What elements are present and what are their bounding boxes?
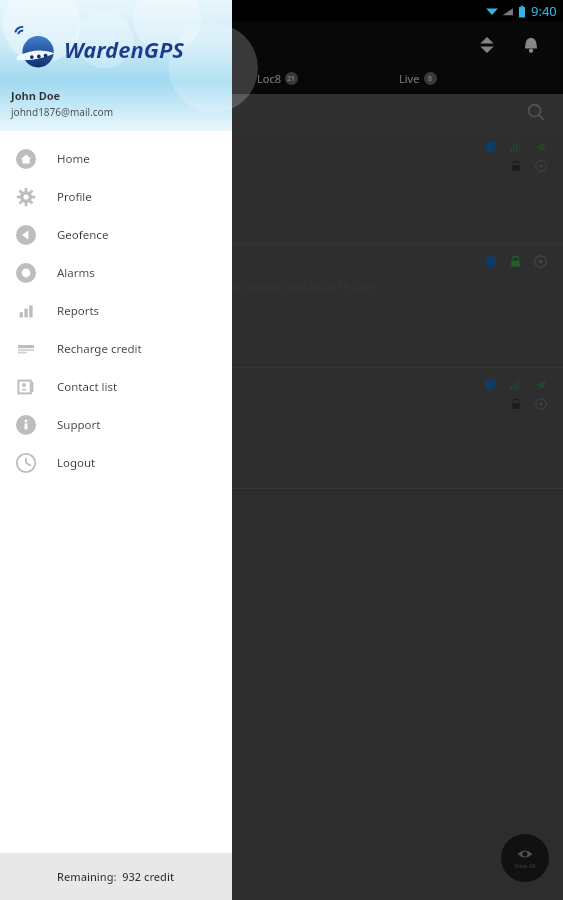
staticText: Protect bbox=[100, 71, 138, 86]
staticText: John Doe bbox=[11, 88, 61, 103]
button[interactable]: Sort bbox=[467, 25, 507, 65]
staticText: WardenGPS bbox=[64, 34, 184, 64]
button[interactable]: View All bbox=[501, 834, 549, 882]
button[interactable]: Protect bbox=[94, 69, 161, 88]
button[interactable]: 34% bbox=[0, 130, 563, 244]
button[interactable]: Profile bbox=[0, 178, 232, 216]
staticText: 8 bbox=[428, 74, 433, 84]
staticText: 34% bbox=[69, 186, 91, 201]
staticText: Support bbox=[57, 417, 101, 433]
staticText: Western Australia, Australia bbox=[0, 448, 128, 462]
staticText: Contact list bbox=[57, 379, 118, 395]
staticText: View All bbox=[514, 862, 536, 870]
button[interactable]: Notifications bbox=[511, 25, 551, 65]
button[interactable]: Last update 2020-01-03 15:47:03 bbox=[0, 245, 563, 367]
staticText: Live bbox=[399, 71, 420, 86]
staticText: Remaining: 932 credit bbox=[57, 869, 175, 884]
staticText: Reports bbox=[57, 303, 100, 319]
button[interactable]: Contact list bbox=[0, 368, 232, 406]
staticText: Recharge credit bbox=[57, 341, 142, 357]
button[interactable]: Loc8 bbox=[251, 69, 304, 88]
button[interactable]: Live bbox=[393, 69, 443, 88]
staticText: Loc8 bbox=[257, 71, 281, 86]
staticText: Last update 2020-01-03 15:47:03 bbox=[225, 281, 378, 295]
button[interactable]: Logout bbox=[0, 444, 232, 482]
staticText: Geofence bbox=[57, 227, 109, 243]
button[interactable]: Geofence bbox=[0, 216, 232, 254]
button[interactable]: Alarms bbox=[0, 254, 232, 292]
button[interactable]: Support bbox=[0, 406, 232, 444]
button[interactable]: Western Australia, Australia bbox=[0, 368, 563, 488]
staticText: johnd1876@mail.com bbox=[11, 105, 114, 119]
staticText: 9:40 bbox=[531, 2, 557, 20]
button[interactable]: Reports bbox=[0, 292, 232, 330]
staticText: 21 bbox=[287, 74, 296, 84]
button[interactable]: Recharge credit bbox=[0, 330, 232, 368]
staticText: Profile bbox=[57, 189, 92, 205]
staticText: Logout bbox=[57, 455, 96, 471]
staticText: Home bbox=[57, 151, 90, 167]
button[interactable]: Home bbox=[0, 140, 232, 178]
staticText: Alarms bbox=[57, 265, 95, 281]
